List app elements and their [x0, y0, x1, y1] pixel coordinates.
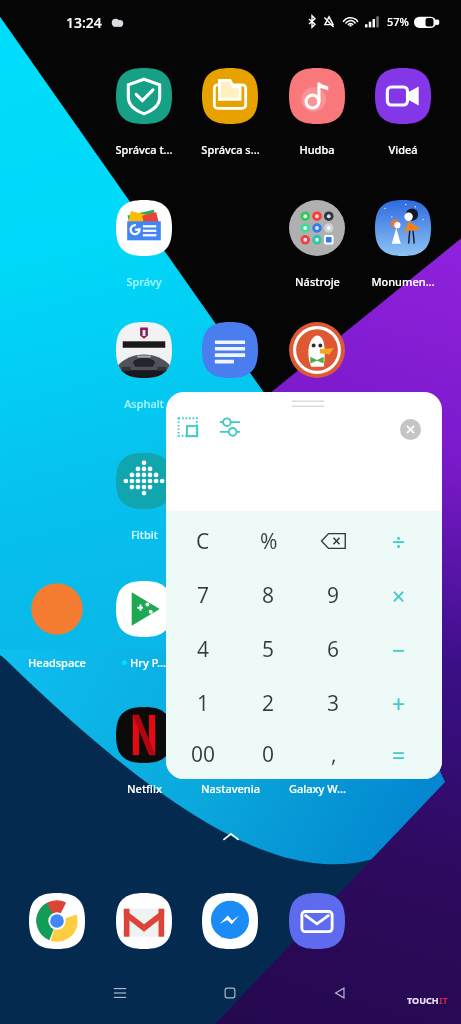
staticText: ÷	[392, 526, 406, 557]
button[interactable]: 4	[170, 622, 236, 676]
staticText: Hudba	[299, 142, 335, 157]
button[interactable]: Chrome	[26, 890, 88, 952]
button[interactable]: %	[236, 514, 301, 568]
staticText: Headspace	[28, 655, 86, 670]
staticText: 57%	[387, 14, 409, 29]
staticText: TOUCH	[407, 994, 439, 1006]
staticText: 2	[262, 689, 275, 718]
button[interactable]: Správca s...	[187, 68, 273, 157]
staticText: 4	[197, 635, 210, 664]
button[interactable]: Správy	[101, 200, 187, 289]
button[interactable]: C	[170, 514, 236, 568]
staticText: 6	[327, 635, 340, 664]
button[interactable]: ,	[301, 730, 366, 779]
button[interactable]: 3	[301, 676, 366, 730]
staticText: Správca s...	[201, 142, 260, 157]
button[interactable]: 0	[236, 730, 301, 779]
staticText: Netflix	[127, 781, 162, 796]
button[interactable]: Hudba	[274, 68, 360, 157]
button[interactable]: Recent apps	[94, 975, 146, 1011]
staticText: 7	[197, 581, 210, 610]
button[interactable]: Open app drawer	[0, 822, 461, 852]
staticText: −	[392, 634, 406, 665]
button[interactable]: Messenger	[199, 890, 261, 952]
button[interactable]: Home	[204, 975, 256, 1011]
button[interactable]: Resize window	[172, 411, 204, 443]
button[interactable]: Monumen...	[360, 200, 446, 289]
button[interactable]: 7	[170, 568, 236, 622]
staticText: 13:24	[66, 13, 102, 32]
button[interactable]	[187, 322, 273, 411]
staticText: 9	[327, 581, 340, 610]
staticText: 5	[262, 635, 275, 664]
button[interactable]: Email	[286, 890, 348, 952]
button[interactable]: Netflix	[101, 707, 187, 796]
button[interactable]: Hry P...	[101, 581, 187, 670]
button[interactable]: Fitbit	[101, 453, 187, 542]
staticText: 1	[197, 689, 210, 718]
button[interactable]: ×	[366, 568, 431, 622]
staticText: IT	[439, 994, 448, 1006]
staticText: Správca t...	[115, 142, 173, 157]
staticText: +	[392, 688, 406, 719]
button[interactable]: 5	[236, 622, 301, 676]
staticText: C	[196, 527, 210, 556]
staticText: Monumen...	[371, 274, 435, 289]
staticText: 0	[262, 740, 275, 769]
button[interactable]: Asphalt	[101, 322, 187, 411]
button[interactable]: Settings	[214, 411, 246, 443]
button[interactable]: 9	[301, 568, 366, 622]
button[interactable]: Nastavenia	[187, 707, 273, 796]
button[interactable]: Headspace	[14, 581, 100, 670]
button[interactable]: Galaxy W...	[274, 707, 360, 796]
staticText: =	[392, 739, 406, 770]
button[interactable]: 2	[236, 676, 301, 730]
staticText: ×	[392, 580, 406, 611]
staticText: Galaxy W...	[289, 781, 346, 796]
staticText: Nástroje	[295, 274, 340, 289]
button[interactable]: 00	[170, 730, 236, 779]
button[interactable]	[274, 322, 360, 411]
button[interactable]: 8	[236, 568, 301, 622]
staticText: Hry P...	[130, 655, 166, 670]
staticText: Fitbit	[131, 527, 158, 542]
button[interactable]: −	[366, 622, 431, 676]
button[interactable]: Back	[314, 975, 366, 1011]
button[interactable]: =	[366, 730, 431, 779]
button[interactable]: 1	[170, 676, 236, 730]
staticText: Nastavenia	[201, 781, 260, 796]
button[interactable]: ÷	[366, 514, 431, 568]
staticText: Videá	[388, 142, 418, 157]
button[interactable]: Close	[396, 415, 425, 444]
button[interactable]: Videá	[360, 68, 446, 157]
button[interactable]: 6	[301, 622, 366, 676]
staticText: 00	[191, 740, 216, 769]
staticText: Asphalt	[124, 396, 164, 411]
staticText: Správy	[126, 274, 162, 289]
staticText: %	[260, 527, 278, 556]
button[interactable]: Správca t...	[101, 68, 187, 157]
button[interactable]	[301, 514, 366, 568]
staticText: 3	[327, 689, 340, 718]
button[interactable]: Gmail	[113, 890, 175, 952]
staticText: ,	[331, 740, 337, 769]
button[interactable]: Nástroje	[274, 200, 360, 289]
button[interactable]: +	[366, 676, 431, 730]
staticText: 8	[262, 581, 275, 610]
